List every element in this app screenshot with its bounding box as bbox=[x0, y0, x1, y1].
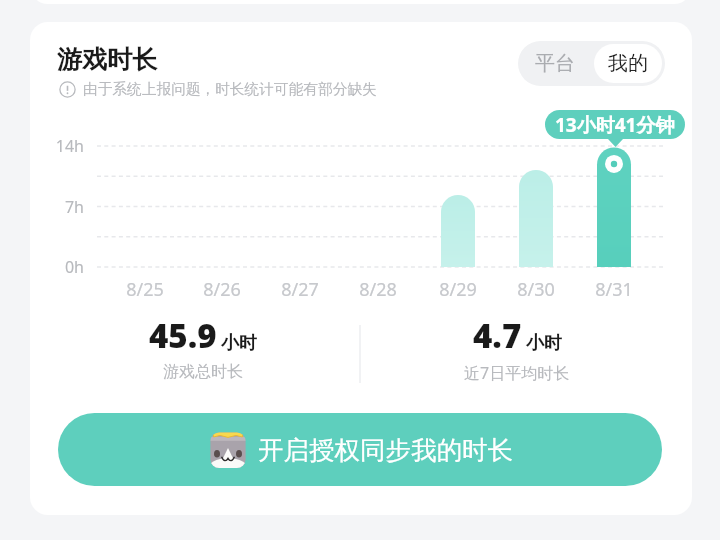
staticText: 游戏总时长 bbox=[163, 362, 243, 382]
staticText: 8/28 bbox=[338, 277, 418, 302]
staticText: 8/29 bbox=[418, 277, 498, 302]
staticText: 8/27 bbox=[260, 277, 340, 302]
staticText: 8/31 bbox=[574, 277, 654, 302]
staticText: 13小时41分钟 bbox=[555, 112, 675, 138]
button[interactable]: 平台 bbox=[518, 41, 591, 86]
staticText: 0h bbox=[20, 256, 84, 278]
staticText: 8/26 bbox=[182, 277, 262, 302]
button[interactable]: 我的 bbox=[594, 44, 662, 83]
staticText: 平台 bbox=[535, 51, 575, 76]
staticText: 8/30 bbox=[496, 277, 576, 302]
staticText: 我的 bbox=[608, 51, 648, 76]
staticText: 7h bbox=[20, 196, 84, 218]
staticText: 游戏时长 bbox=[57, 44, 157, 75]
staticText: 近7日平均时长 bbox=[464, 362, 570, 384]
staticText: 45.9 bbox=[149, 313, 217, 358]
button[interactable]: 开启授权同步我的时长 bbox=[58, 413, 662, 486]
staticText: 8/25 bbox=[105, 277, 185, 302]
staticText: 开启授权同步我的时长 bbox=[258, 434, 513, 466]
staticText: 4.7 bbox=[473, 313, 522, 358]
staticText: 由于系统上报问题，时长统计可能有部分缺失 bbox=[83, 80, 377, 99]
staticText: 小时 bbox=[221, 332, 257, 355]
staticText: 14h bbox=[20, 135, 84, 157]
staticText: 小时 bbox=[526, 332, 562, 355]
